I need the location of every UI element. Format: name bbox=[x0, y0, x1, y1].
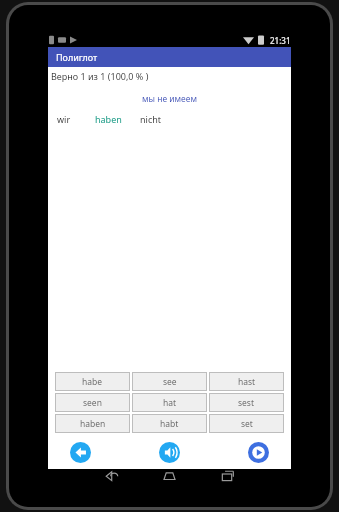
staticText: hast bbox=[238, 376, 256, 388]
button[interactable]: hast bbox=[209, 372, 284, 391]
staticText: sest bbox=[238, 397, 255, 409]
staticText: habe bbox=[82, 376, 103, 388]
staticText: haben bbox=[80, 418, 106, 430]
staticText: haben bbox=[95, 113, 122, 125]
button[interactable]: Back bbox=[70, 442, 91, 463]
button[interactable]: sest bbox=[209, 393, 284, 412]
staticText: мы не имеем bbox=[48, 93, 291, 105]
staticText: set bbox=[241, 418, 253, 430]
button[interactable]: seen bbox=[55, 393, 130, 412]
button[interactable]: haben bbox=[55, 414, 130, 433]
staticText: wir bbox=[57, 113, 71, 125]
staticText: nicht bbox=[140, 113, 162, 125]
staticText: see bbox=[163, 376, 177, 388]
staticText: hat bbox=[163, 397, 177, 409]
button[interactable]: habe bbox=[55, 372, 130, 391]
button[interactable]: hat bbox=[132, 393, 207, 412]
button[interactable]: Play bbox=[248, 442, 269, 463]
button[interactable]: see bbox=[132, 372, 207, 391]
staticText: Верно 1 из 1 (100,0 % ) bbox=[51, 70, 149, 82]
button[interactable]: set bbox=[209, 414, 284, 433]
staticText: 21:31 bbox=[270, 35, 291, 46]
staticText: seen bbox=[83, 397, 102, 409]
button[interactable]: Play sound bbox=[159, 442, 180, 463]
staticText: habt bbox=[160, 418, 179, 430]
staticText: Полиглот bbox=[56, 51, 98, 63]
button[interactable]: habt bbox=[132, 414, 207, 433]
